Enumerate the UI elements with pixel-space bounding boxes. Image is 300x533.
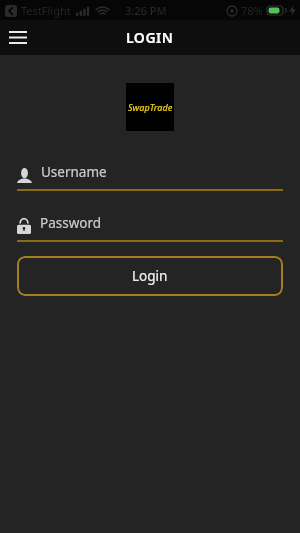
staticText: 3:26 PM [125,3,167,18]
staticText: SwapTrade [128,101,173,113]
staticText: TestFlight [21,3,71,18]
staticText: Username [41,163,107,181]
staticText: Password [40,214,102,232]
staticText: 78% [241,3,263,18]
button[interactable]: Login [17,256,283,296]
staticText: LOGIN [126,28,174,47]
button[interactable] [8,28,28,48]
button[interactable]: Username [17,163,283,191]
button[interactable]: Password [17,214,283,242]
staticText: Login [132,267,168,285]
